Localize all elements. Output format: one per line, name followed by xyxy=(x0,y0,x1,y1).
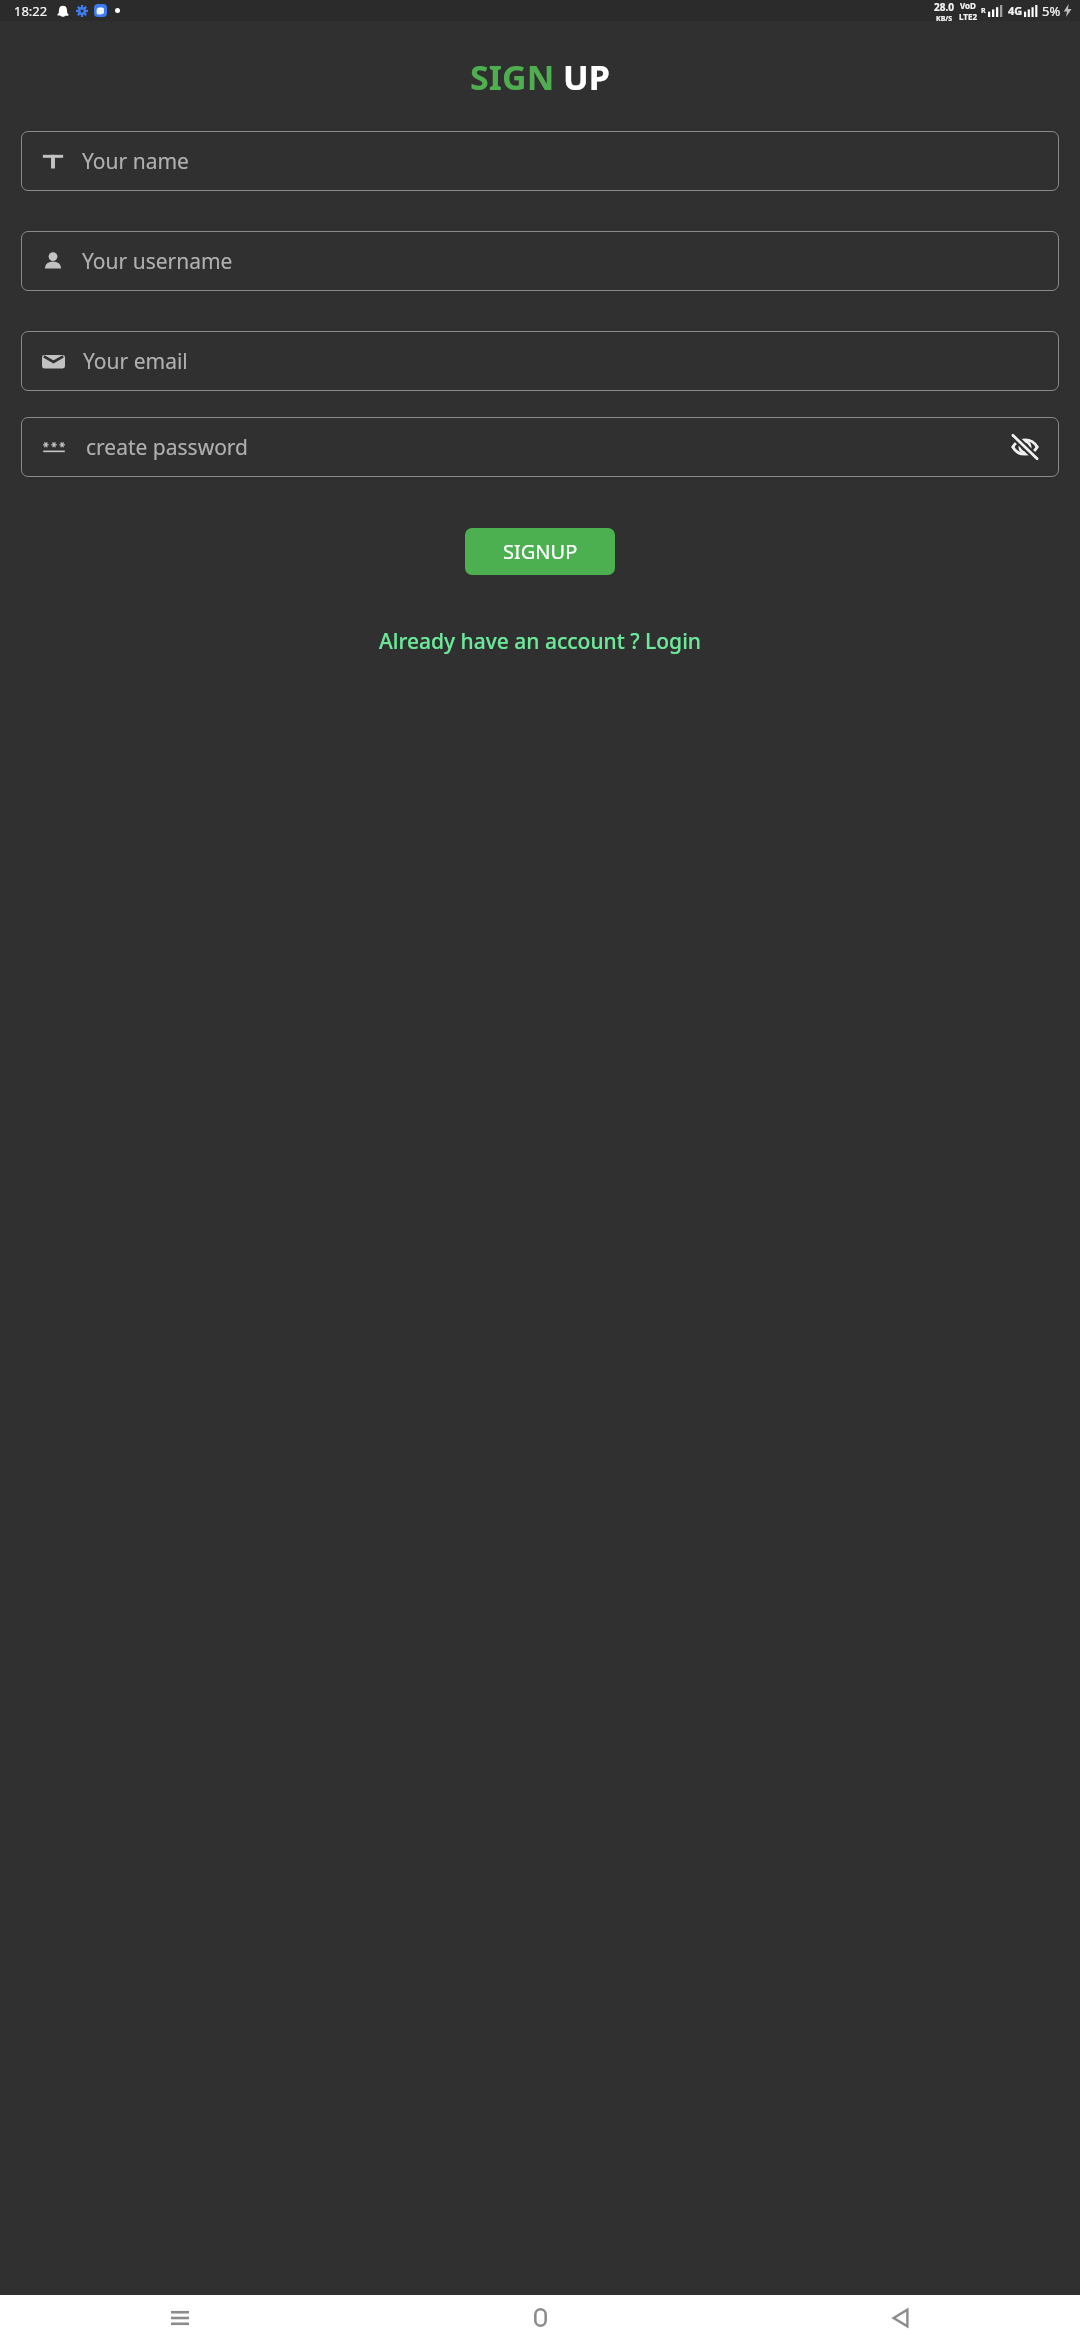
staticText: create password xyxy=(86,433,249,462)
staticText: SIGNUP xyxy=(503,538,578,565)
button[interactable]: Home xyxy=(360,2295,720,2340)
button[interactable]: Already have an account ? Login xyxy=(371,621,709,662)
staticText: 28.0 xyxy=(934,0,954,14)
button[interactable]: Toggle password visibility xyxy=(1007,429,1043,465)
button[interactable]: Your username xyxy=(21,231,1059,291)
staticText: LTE2 xyxy=(959,11,977,21)
staticText: Already have an account ? Login xyxy=(379,627,701,656)
staticText: SIGN UP xyxy=(470,54,610,100)
staticText: 18:22 xyxy=(14,2,48,20)
staticText: KB/S xyxy=(936,14,953,21)
staticText: Your email xyxy=(83,347,188,376)
button[interactable]: Your email xyxy=(21,331,1059,391)
staticText: 4G xyxy=(1008,3,1023,18)
staticText: 5% xyxy=(1042,2,1061,20)
staticText: R xyxy=(981,6,986,16)
button[interactable]: create password xyxy=(21,417,1059,477)
staticText: Your name xyxy=(82,147,189,176)
button[interactable]: Back xyxy=(720,2295,1080,2340)
staticText: VoD xyxy=(960,0,976,11)
staticText: Your username xyxy=(82,247,233,276)
button[interactable]: Your name xyxy=(21,131,1059,191)
button[interactable]: SIGNUP xyxy=(465,528,615,575)
button[interactable]: Recent apps xyxy=(0,2295,360,2340)
